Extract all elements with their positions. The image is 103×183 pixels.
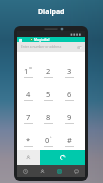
staticText: 3 <box>67 66 72 76</box>
staticText: 8 <box>46 112 51 122</box>
button[interactable]: 3 <box>59 55 80 78</box>
button[interactable]: * <box>18 124 38 147</box>
button[interactable]: 2 <box>38 55 59 78</box>
staticText: Dialpad <box>38 7 65 17</box>
button[interactable]: 1 <box>18 55 38 78</box>
button[interactable]: Menu <box>18 38 22 42</box>
button[interactable]: 4 <box>18 78 38 101</box>
staticText: Magicdial <box>34 38 50 42</box>
staticText: # <box>67 135 72 145</box>
button[interactable]: Call <box>40 150 85 165</box>
button[interactable]: 0 <box>38 124 59 147</box>
button[interactable]: Messages <box>68 165 85 177</box>
button[interactable]: Contacts <box>34 165 51 177</box>
button[interactable]: Add contact <box>17 150 40 165</box>
button[interactable]: 9 <box>59 101 80 124</box>
staticText: + <box>50 135 52 139</box>
staticText: 7 <box>26 112 31 122</box>
button[interactable]: 5 <box>38 78 59 101</box>
button[interactable]: 8 <box>38 101 59 124</box>
staticText: * <box>26 135 31 145</box>
staticText: Enter a number or address <box>21 45 77 49</box>
button[interactable]: 7 <box>18 101 38 124</box>
staticText: 9 <box>67 112 72 122</box>
button[interactable]: Recents <box>17 165 34 177</box>
staticText: 6 <box>67 89 72 99</box>
button[interactable]: Toggle settings <box>77 46 82 49</box>
button[interactable]: Dialpad <box>51 165 68 177</box>
staticText: oo <box>29 66 33 70</box>
staticText: 5 <box>46 89 51 99</box>
staticText: 0 <box>45 135 50 145</box>
button[interactable]: # <box>59 124 80 147</box>
staticText: 4 <box>26 89 31 99</box>
button[interactable]: 6 <box>59 78 80 101</box>
staticText: 1 <box>24 66 29 76</box>
staticText: 2 <box>46 66 51 76</box>
